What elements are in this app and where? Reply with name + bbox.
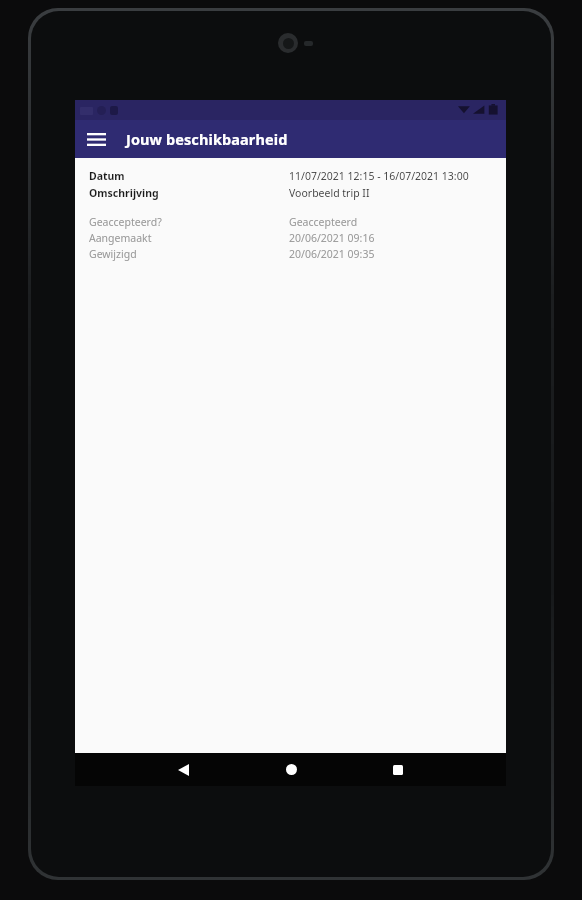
button[interactable]: Home bbox=[264, 753, 318, 786]
staticText: Jouw beschikbaarheid bbox=[126, 129, 288, 149]
button[interactable]: Open navigation menu bbox=[81, 124, 111, 154]
button[interactable]: Recent apps bbox=[371, 753, 425, 786]
staticText: 20/06/2021 09:16 bbox=[289, 231, 496, 245]
button[interactable]: Back bbox=[156, 753, 210, 786]
staticText: Geaccepteerd bbox=[289, 215, 496, 229]
staticText: Geaccepteerd? bbox=[89, 215, 289, 229]
staticText: Voorbeeld trip II bbox=[289, 186, 496, 200]
staticText: Omschrijving bbox=[89, 186, 289, 200]
staticText: Datum bbox=[89, 169, 289, 183]
staticText: 11/07/2021 12:15 - 16/07/2021 13:00 bbox=[289, 169, 496, 183]
staticText: 20/06/2021 09:35 bbox=[289, 247, 496, 261]
staticText: Gewijzigd bbox=[89, 247, 289, 261]
staticText: Aangemaakt bbox=[89, 231, 289, 245]
